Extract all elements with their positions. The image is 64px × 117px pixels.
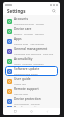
button[interactable]: Device protection xyxy=(5,96,58,106)
staticText: Vision Hearing Dexterity xyxy=(14,62,44,65)
staticText: Battery Storage Memory xyxy=(14,32,45,35)
staticText: Settings xyxy=(7,8,26,14)
button[interactable]: User guide xyxy=(5,76,58,86)
staticText: User guide xyxy=(14,77,31,81)
button[interactable]: Home xyxy=(28,108,35,115)
staticText: Device care xyxy=(14,27,32,31)
button[interactable]: Developer options xyxy=(5,106,58,107)
button[interactable]: Accounts xyxy=(5,16,58,26)
button[interactable]: Search xyxy=(51,8,57,14)
button[interactable]: Back xyxy=(44,108,51,115)
button[interactable]: Remote support xyxy=(5,86,58,96)
button[interactable]: Device care xyxy=(5,26,58,36)
staticText: Anti-malware Security xyxy=(14,102,40,105)
staticText: Developer options xyxy=(14,106,42,107)
staticText: Accounts xyxy=(14,17,28,21)
button[interactable]: General management xyxy=(5,46,58,56)
button[interactable]: Accessibility xyxy=(5,56,58,66)
staticText: Language and keyboard Date and time xyxy=(14,52,56,55)
button[interactable]: Recents xyxy=(12,108,19,115)
staticText: Default apps App settings xyxy=(14,42,45,45)
staticText: Samsung account Google xyxy=(14,22,44,25)
staticText: Get live help xyxy=(14,92,28,95)
staticText: Software update xyxy=(14,67,40,71)
staticText: Apps xyxy=(14,37,22,41)
staticText: Remote support xyxy=(14,87,39,91)
staticText: Download and install xyxy=(14,72,38,75)
staticText: Accessibility xyxy=(14,57,33,61)
button[interactable]: Apps xyxy=(5,36,58,46)
button[interactable]: Software update xyxy=(5,66,58,76)
staticText: Device protection xyxy=(14,97,41,101)
staticText: General management xyxy=(14,47,48,51)
staticText: Useful tips xyxy=(14,82,26,85)
